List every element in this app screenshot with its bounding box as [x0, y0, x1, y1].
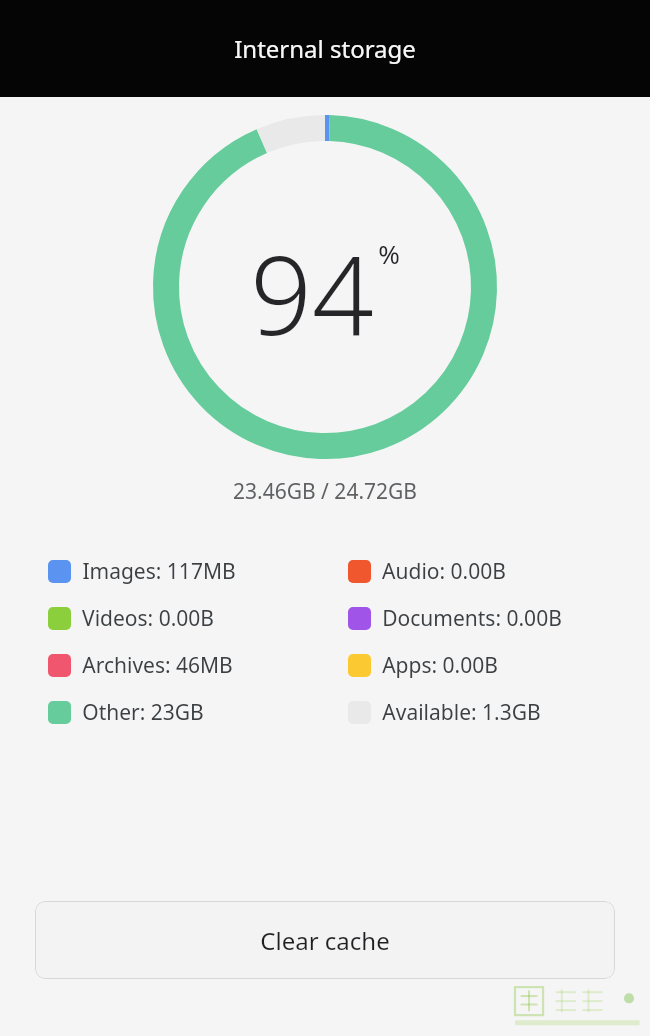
staticText: 94	[250, 220, 374, 367]
button[interactable]: Apps: 0.00B	[348, 651, 650, 680]
staticText: Other: 23GB	[82, 698, 204, 727]
button[interactable]: Documents: 0.00B	[348, 604, 650, 633]
staticText: Available: 1.3GB	[382, 698, 541, 727]
other: Watermark	[500, 982, 650, 1033]
staticText: Internal storage	[234, 32, 416, 65]
button[interactable]: Clear cache	[35, 901, 615, 979]
staticText: Documents: 0.00B	[382, 604, 562, 633]
button[interactable]: Archives: 46MB	[48, 651, 348, 680]
staticText: 23.46GB / 24.72GB	[233, 477, 417, 506]
button[interactable]: Videos: 0.00B	[48, 604, 348, 633]
staticText: Clear cache	[260, 924, 390, 957]
staticText: Archives: 46MB	[82, 651, 233, 680]
staticText: Images: 117MB	[82, 557, 236, 586]
staticText: Apps: 0.00B	[382, 651, 498, 680]
button[interactable]: Other: 23GB	[48, 698, 348, 727]
button[interactable]: Available: 1.3GB	[348, 698, 650, 727]
staticText: %	[378, 236, 400, 271]
staticText: Videos: 0.00B	[82, 604, 214, 633]
staticText: Audio: 0.00B	[382, 557, 506, 586]
button[interactable]: Images: 117MB	[48, 557, 348, 586]
button[interactable]: Audio: 0.00B	[348, 557, 650, 586]
